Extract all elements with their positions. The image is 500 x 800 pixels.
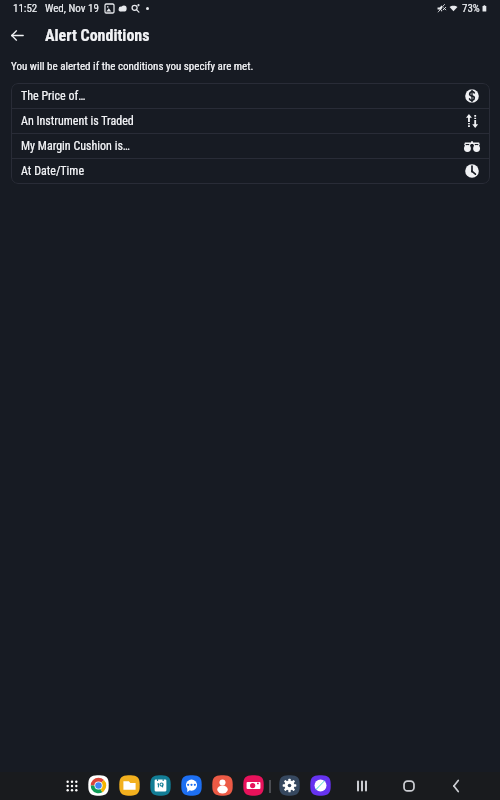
button[interactable]: Contacts bbox=[212, 775, 233, 796]
button[interactable]: Settings bbox=[279, 775, 300, 796]
staticText: My Margin Cushion is… bbox=[21, 139, 464, 153]
button[interactable]: Back bbox=[445, 775, 467, 797]
staticText: 73% bbox=[462, 2, 480, 15]
button[interactable]: My Margin Cushion is… bbox=[11, 134, 490, 158]
button[interactable]: Files bbox=[119, 775, 140, 796]
staticText: An Instrument is Traded bbox=[21, 114, 464, 128]
staticText: The Price of… bbox=[21, 89, 464, 103]
button[interactable]: Browser bbox=[310, 775, 331, 796]
staticText: Wed, Nov 19 bbox=[45, 2, 99, 15]
button[interactable]: Camera bbox=[243, 775, 264, 796]
button[interactable]: Recent apps bbox=[351, 775, 373, 797]
button[interactable]: At Date/Time bbox=[11, 159, 490, 183]
button[interactable]: Home bbox=[398, 775, 420, 797]
staticText: At Date/Time bbox=[21, 164, 464, 178]
button[interactable]: All apps bbox=[66, 780, 78, 792]
button[interactable]: Messages bbox=[181, 775, 202, 796]
button[interactable]: Back bbox=[5, 23, 29, 47]
button[interactable]: The Price of… bbox=[11, 83, 490, 108]
staticText: 11:52 bbox=[13, 2, 38, 15]
staticText: You will be alerted if the conditions yo… bbox=[11, 60, 254, 73]
button[interactable]: An Instrument is Traded bbox=[11, 109, 490, 133]
button[interactable]: Calendar bbox=[150, 775, 171, 796]
staticText: Alert Conditions bbox=[45, 26, 150, 45]
button[interactable]: Chrome bbox=[88, 775, 109, 796]
